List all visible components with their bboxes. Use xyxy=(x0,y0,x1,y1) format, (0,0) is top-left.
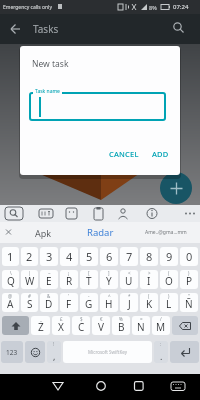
staticText: P xyxy=(186,274,193,288)
staticText: . xyxy=(160,350,163,362)
button[interactable]: / xyxy=(152,316,170,335)
staticText: S xyxy=(27,297,33,311)
button[interactable]: < xyxy=(120,270,138,289)
button[interactable]: ¡ xyxy=(60,270,78,289)
button[interactable]: = xyxy=(132,316,150,335)
button[interactable] xyxy=(172,316,198,335)
staticText: ' xyxy=(68,293,70,299)
button[interactable]: # xyxy=(21,293,38,312)
button[interactable] xyxy=(170,14,190,44)
button[interactable]: - xyxy=(80,293,98,312)
staticText: ) xyxy=(168,293,170,299)
staticText: Microsoft SwiftKey xyxy=(88,349,127,355)
button[interactable]: " xyxy=(180,293,198,312)
button[interactable]: \ xyxy=(2,270,19,289)
button[interactable]: $ xyxy=(72,316,90,335)
staticText: 9 xyxy=(166,249,173,264)
staticText: I xyxy=(147,274,151,288)
staticText: W xyxy=(25,274,35,288)
button[interactable] xyxy=(25,341,45,363)
staticText: ( xyxy=(168,270,170,276)
button[interactable]: ( xyxy=(160,270,178,289)
staticText: 7 xyxy=(126,249,133,264)
button[interactable]: 123 xyxy=(1,341,23,363)
button[interactable]: 1 xyxy=(2,247,19,266)
staticText: E xyxy=(46,274,52,288)
staticText: Ñ xyxy=(185,297,193,311)
button[interactable]: Apk xyxy=(20,222,66,243)
button[interactable]: _ xyxy=(31,316,50,335)
button[interactable] xyxy=(2,316,29,335)
staticText: ADD xyxy=(152,149,169,159)
staticText: Q xyxy=(7,274,15,288)
button[interactable] xyxy=(66,374,133,400)
staticText: " xyxy=(188,293,190,299)
button[interactable]: 2 xyxy=(21,247,38,266)
button[interactable]: £ xyxy=(52,316,70,335)
staticText: ! xyxy=(53,341,55,347)
staticText: # xyxy=(28,293,31,299)
button[interactable] xyxy=(8,14,28,44)
button[interactable]: € xyxy=(92,316,110,335)
button[interactable]: 9 xyxy=(160,247,178,266)
staticText: G xyxy=(85,297,93,311)
button[interactable]: : xyxy=(154,341,168,363)
button[interactable]: ^ xyxy=(100,293,118,312)
staticText: M xyxy=(156,320,166,334)
staticText: % xyxy=(119,316,123,322)
button[interactable]: & xyxy=(40,293,58,312)
staticText: \ xyxy=(10,270,12,276)
button[interactable]: % xyxy=(112,316,130,335)
button[interactable]: ADD xyxy=(152,149,169,159)
staticText: B xyxy=(118,320,125,334)
staticText: £ xyxy=(60,316,63,322)
button[interactable]: 0 xyxy=(180,247,198,266)
button[interactable]: @ xyxy=(2,293,19,312)
staticText: CANCEL xyxy=(109,149,139,159)
button[interactable]: > xyxy=(140,270,158,289)
button[interactable] xyxy=(133,374,200,400)
button[interactable]: * xyxy=(120,293,138,312)
staticText: D xyxy=(45,297,53,311)
staticText: 8 xyxy=(146,249,153,264)
button[interactable] xyxy=(0,374,66,400)
button[interactable]: | xyxy=(21,270,38,289)
staticText: @ xyxy=(8,293,13,299)
staticText: J xyxy=(128,297,131,311)
staticText: Y xyxy=(106,274,112,288)
button[interactable]: [ xyxy=(80,270,98,289)
button[interactable]: ! xyxy=(47,341,61,363)
button[interactable]: Ame..@gma...mm xyxy=(134,222,198,243)
button[interactable]: 5 xyxy=(80,247,98,266)
staticText: < xyxy=(128,270,131,276)
staticText: 0 xyxy=(186,249,193,264)
button[interactable]: ) xyxy=(180,270,198,289)
staticText: ) xyxy=(188,270,190,276)
button[interactable]: 6 xyxy=(100,247,118,266)
staticText: 6 xyxy=(106,249,113,264)
button[interactable]: Microsoft SwiftKey xyxy=(63,341,152,363)
button[interactable]: 3 xyxy=(40,247,58,266)
staticText: H xyxy=(105,297,113,311)
staticText: Radar xyxy=(87,226,114,239)
button[interactable]: CANCEL xyxy=(109,149,139,159)
button[interactable]: ~ xyxy=(40,270,58,289)
button[interactable] xyxy=(160,172,192,204)
staticText: ^ xyxy=(108,293,111,299)
button[interactable]: 4 xyxy=(60,247,78,266)
button[interactable] xyxy=(170,341,199,363)
staticText: O xyxy=(165,274,173,288)
staticText: ( xyxy=(148,293,150,299)
button[interactable]: 7 xyxy=(120,247,138,266)
staticText: C xyxy=(78,320,85,334)
button[interactable]: ) xyxy=(160,293,178,312)
button[interactable]: ] xyxy=(100,270,118,289)
button[interactable]: ( xyxy=(140,293,158,312)
staticText: 5 xyxy=(86,249,93,264)
staticText: ¡ xyxy=(68,270,70,276)
button[interactable]: 8 xyxy=(140,247,158,266)
staticText: 123 xyxy=(6,348,18,357)
button[interactable]: ' xyxy=(60,293,78,312)
button[interactable]: Radar xyxy=(67,222,133,243)
staticText: T xyxy=(86,274,92,288)
